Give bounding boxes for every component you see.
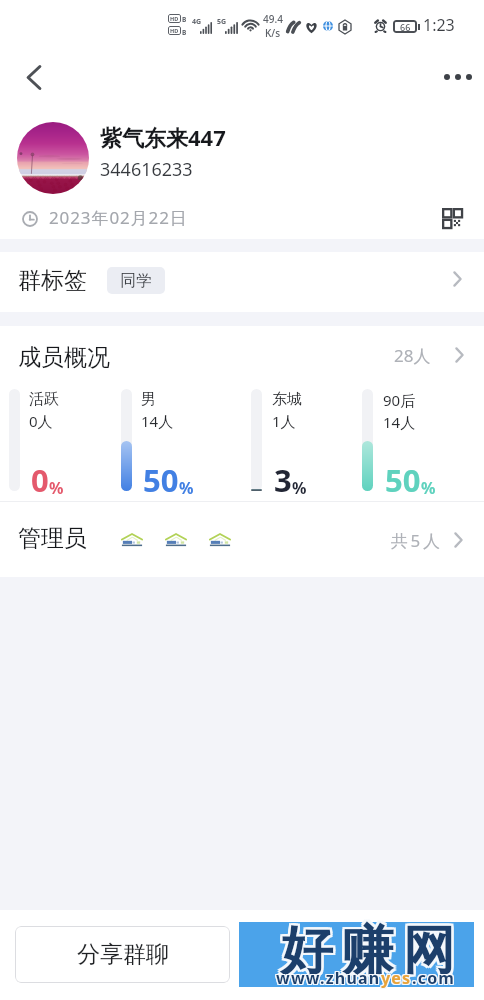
staticText: HD	[170, 15, 179, 22]
staticText: 66	[400, 21, 411, 33]
staticText: yes	[381, 967, 412, 989]
staticText: B	[182, 28, 187, 37]
staticText: 344616233	[100, 157, 193, 182]
button[interactable]: QR code	[436, 202, 468, 234]
staticText: 50	[143, 459, 179, 501]
staticText: www.zhuan	[277, 968, 382, 990]
staticText: .com	[412, 966, 456, 988]
staticText: 男	[141, 390, 156, 409]
staticText: 好赚网	[276, 918, 459, 983]
staticText: %	[292, 477, 307, 499]
staticText: 49.4	[263, 12, 283, 26]
button[interactable]: 管理员	[0, 502, 484, 577]
staticText: .com	[413, 967, 457, 989]
staticText: %	[179, 477, 194, 499]
staticText: 好赚网	[274, 916, 457, 981]
staticText: www.zhuan	[276, 968, 381, 990]
staticText: 好赚网	[274, 918, 457, 983]
staticText: yes	[380, 966, 411, 988]
staticText: yes	[380, 967, 411, 989]
staticText: 1:23	[423, 14, 455, 36]
staticText: 0人	[29, 411, 53, 431]
staticText: yes	[382, 967, 413, 989]
staticText: 0	[31, 459, 49, 501]
staticText: yes	[381, 968, 412, 990]
staticText: 90后	[383, 390, 416, 410]
staticText: HD	[170, 27, 179, 34]
staticText: yes	[381, 966, 412, 988]
staticText: %	[49, 477, 64, 499]
staticText: www.zhuan	[275, 968, 380, 990]
button[interactable]: 2023年02月22日	[0, 196, 484, 237]
staticText: www.zhuan	[276, 967, 381, 989]
staticText: 28人	[394, 344, 431, 367]
staticText: 东城	[272, 390, 302, 409]
staticText: 好赚网	[274, 920, 457, 985]
staticText: 好赚网	[276, 916, 459, 981]
staticText: 3	[274, 459, 292, 501]
staticText: .com	[411, 967, 455, 989]
staticText: 共5人	[391, 529, 443, 552]
staticText: www.zhuan	[275, 966, 380, 988]
staticText: 好赚网	[278, 916, 461, 981]
staticText: .com	[412, 968, 456, 990]
button[interactable]: 群标签	[0, 252, 484, 312]
staticText: 管理员	[18, 524, 87, 553]
staticText: yes	[380, 968, 411, 990]
staticText: 活跃	[29, 390, 59, 409]
staticText: 群标签	[18, 266, 87, 295]
staticText: .com	[411, 968, 455, 990]
staticText: 好赚网	[276, 920, 459, 985]
staticText: 成员概况	[18, 343, 110, 372]
staticText: %	[421, 477, 436, 499]
staticText: 分享群聊	[77, 940, 169, 969]
staticText: www.zhuan	[276, 966, 381, 988]
staticText: 1人	[272, 411, 296, 431]
staticText: yes	[382, 968, 413, 990]
staticText: 2023年02月22日	[49, 206, 188, 229]
button[interactable]: 分享群聊	[15, 926, 230, 983]
staticText: .com	[413, 966, 457, 988]
staticText: www.zhuan	[277, 967, 382, 989]
button[interactable]: Back	[12, 55, 56, 99]
staticText: www.zhuan	[275, 967, 380, 989]
staticText: .com	[411, 966, 455, 988]
button[interactable]: More options	[436, 55, 480, 99]
button[interactable]: 成员概况	[0, 326, 484, 388]
staticText: 同学	[120, 271, 152, 291]
staticText: B	[182, 15, 187, 24]
staticText: .com	[412, 967, 456, 989]
staticText: .com	[413, 968, 457, 990]
staticText: www.zhuan	[277, 966, 382, 988]
staticText: yes	[382, 966, 413, 988]
staticText: 50	[385, 459, 421, 501]
staticText: 5G	[217, 17, 227, 27]
staticText: 紫气东来447	[100, 122, 226, 152]
staticText: 4G	[192, 17, 202, 27]
staticText: 好赚网	[278, 920, 461, 985]
staticText: 14人	[141, 411, 174, 431]
staticText: K/s	[265, 26, 281, 40]
staticText: 好赚网	[278, 918, 461, 983]
staticText: 14人	[383, 412, 416, 432]
